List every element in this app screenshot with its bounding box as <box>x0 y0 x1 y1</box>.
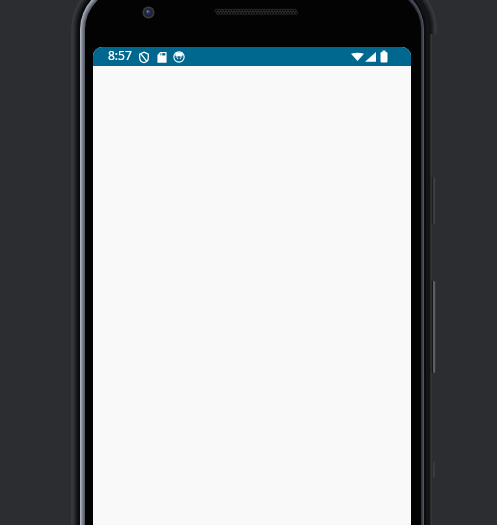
other: VPN disabled <box>138 51 150 63</box>
button[interactable]: Status bar <box>93 47 411 66</box>
other: SD card <box>156 51 168 63</box>
other: Battery <box>378 50 390 63</box>
staticText: 8:57 <box>108 47 132 63</box>
other: Mobile signal <box>365 51 376 63</box>
other: Wi-Fi <box>351 51 364 62</box>
other: Notification <box>173 51 185 63</box>
